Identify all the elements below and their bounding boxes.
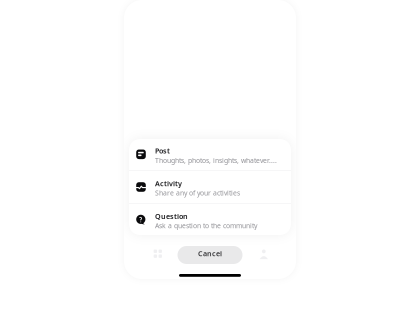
staticText: Activity bbox=[155, 179, 182, 188]
button[interactable]: Feed bbox=[135, 244, 179, 266]
button[interactable]: Activity bbox=[129, 171, 291, 203]
staticText: Question bbox=[155, 211, 188, 221]
staticText: Ask a question to the community bbox=[155, 221, 257, 230]
button[interactable]: Post bbox=[129, 138, 291, 170]
button[interactable]: Question bbox=[129, 204, 291, 236]
staticText: Thoughts, photos, insights, whatever.... bbox=[155, 156, 277, 165]
staticText: Post bbox=[155, 146, 170, 156]
staticText: Share any of your activities bbox=[155, 188, 240, 198]
staticText: Cancel bbox=[198, 249, 222, 258]
button[interactable]: Profile bbox=[241, 244, 285, 266]
button[interactable]: Cancel bbox=[177, 246, 242, 264]
